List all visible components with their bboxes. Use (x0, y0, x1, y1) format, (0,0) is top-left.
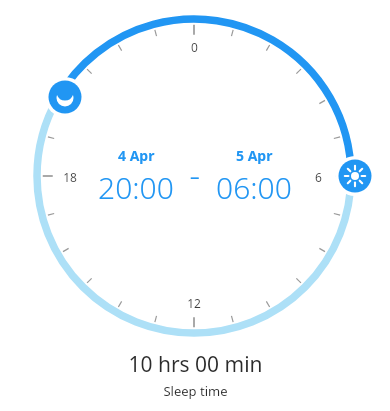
staticText: Sleep time (163, 382, 228, 400)
staticText: 12 (187, 295, 201, 311)
staticText: 20:00 (98, 167, 174, 208)
staticText: 5 Apr (236, 146, 273, 165)
staticText: 4 Apr (118, 146, 155, 165)
staticText: 0 (191, 39, 198, 55)
button[interactable]: Wake-up handle, 06:00 (335, 156, 375, 196)
staticText: 06:00 (216, 167, 292, 208)
button[interactable]: 10 hrs 00 min (128, 350, 263, 400)
staticText: – (190, 164, 200, 190)
staticText: 18 (63, 169, 77, 185)
staticText: 6 (315, 169, 322, 185)
button[interactable]: Bedtime handle, 20:00 (45, 77, 85, 117)
staticText: 10 hrs 00 min (128, 350, 263, 379)
